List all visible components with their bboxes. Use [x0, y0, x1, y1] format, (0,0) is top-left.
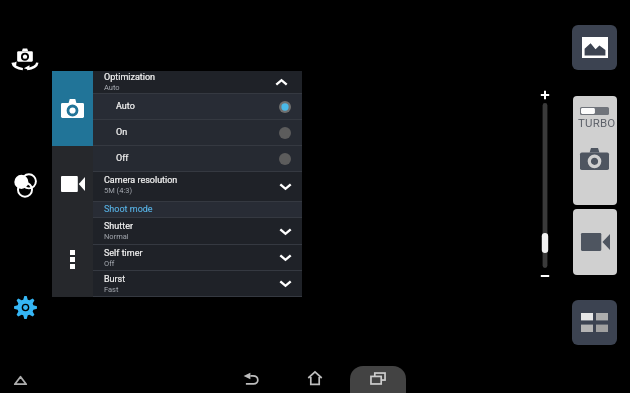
- staticText: Shoot mode: [104, 204, 153, 215]
- staticText: On: [116, 127, 128, 138]
- staticText: Shutter: [104, 221, 133, 232]
- button[interactable]: Auto: [93, 94, 302, 120]
- button[interactable]: Switch camera: [7, 39, 43, 75]
- button[interactable]: Take photo: [573, 96, 617, 205]
- button[interactable]: Up: [2, 369, 38, 391]
- button[interactable]: Optimization: [93, 71, 302, 94]
- button[interactable]: Camera resolution: [93, 172, 302, 202]
- staticText: Auto: [104, 83, 120, 92]
- button[interactable]: Recents: [350, 366, 406, 393]
- button[interactable]: Shutter: [93, 218, 302, 245]
- button[interactable]: Burst: [93, 271, 302, 297]
- staticText: Burst: [104, 274, 126, 285]
- button[interactable]: Shoot mode: [93, 202, 302, 218]
- button[interactable]: Modes: [572, 300, 617, 345]
- button[interactable]: Back: [231, 367, 271, 389]
- staticText: Off: [116, 153, 129, 164]
- staticText: Off: [104, 259, 115, 268]
- button[interactable]: Gallery: [572, 25, 617, 70]
- staticText: Auto: [116, 101, 135, 112]
- staticText: Normal: [104, 232, 129, 241]
- button[interactable]: Off: [93, 146, 302, 172]
- button[interactable]: Camera mode: [52, 71, 93, 146]
- staticText: Self timer: [104, 248, 143, 259]
- staticText: 5M (4:3): [104, 186, 133, 195]
- button[interactable]: On: [93, 120, 302, 146]
- button[interactable]: More options: [52, 221, 93, 297]
- button[interactable]: Home: [295, 367, 335, 389]
- staticText: Optimization: [104, 72, 156, 83]
- staticText: Fast: [104, 285, 119, 294]
- button[interactable]: Settings: [8, 290, 42, 324]
- staticText: Camera resolution: [104, 175, 178, 186]
- button[interactable]: Video mode: [52, 146, 93, 221]
- staticText: TURBO: [578, 116, 616, 129]
- button[interactable]: Self timer: [93, 245, 302, 271]
- button[interactable]: Effects: [7, 167, 43, 203]
- button[interactable]: Record video: [573, 209, 617, 275]
